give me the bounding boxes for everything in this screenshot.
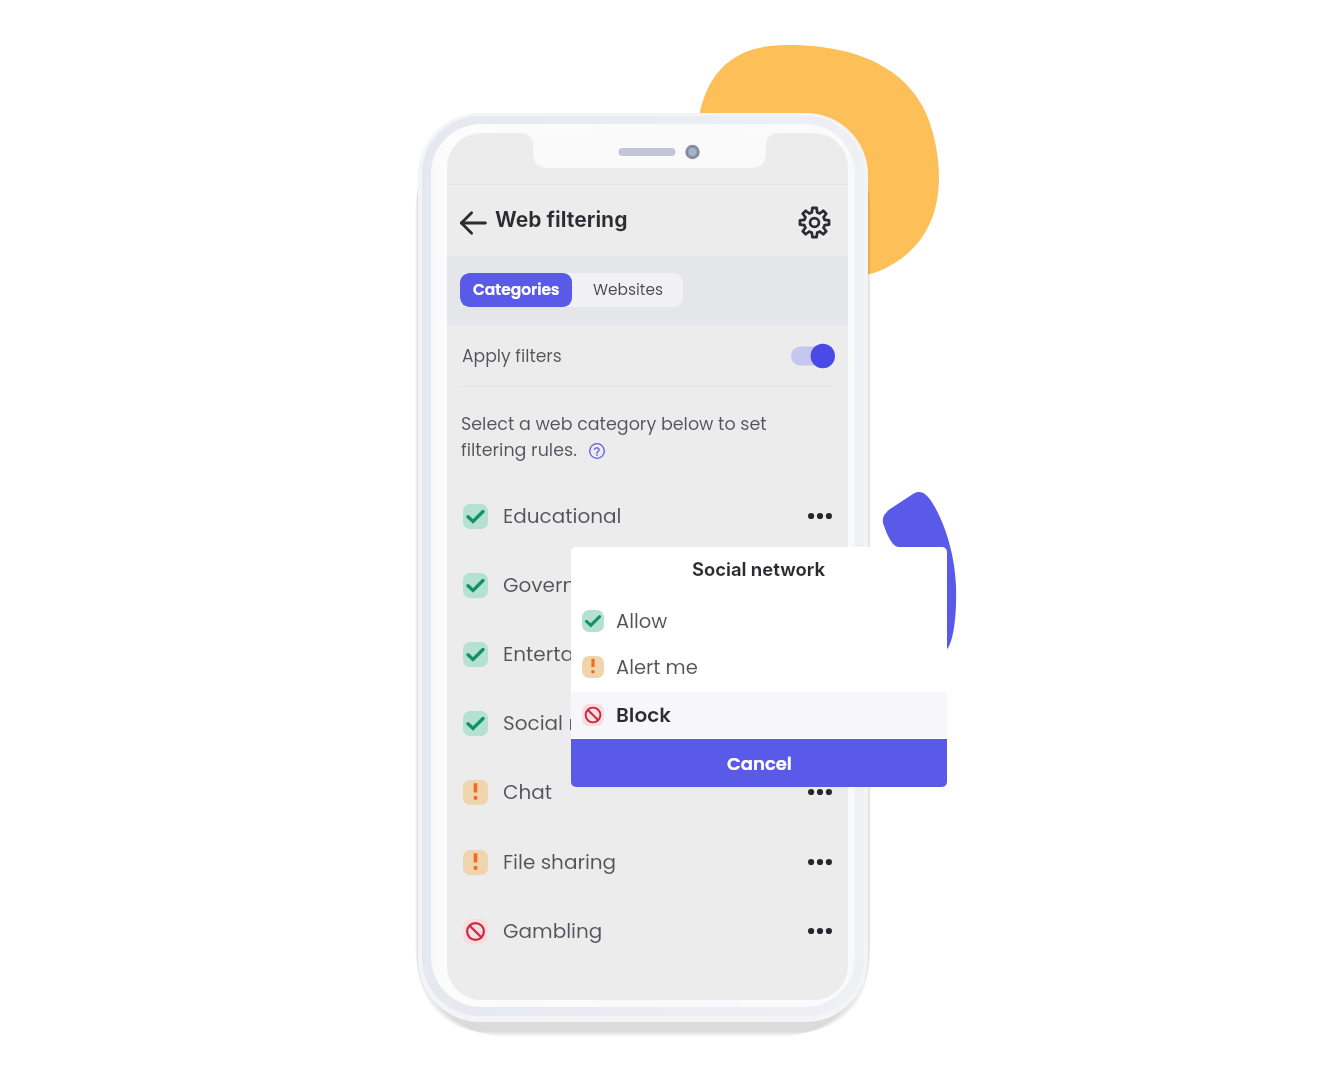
staticText: Government — [503, 571, 629, 599]
button[interactable]: Social network — [447, 688, 848, 758]
staticText: Categories — [473, 279, 560, 301]
button[interactable]: Websites — [572, 273, 683, 307]
staticText: Educational — [503, 502, 622, 530]
staticText: Apply filters — [462, 344, 562, 368]
button[interactable]: More options for File sharing — [800, 842, 840, 882]
staticText: Gambling — [503, 917, 603, 945]
button[interactable]: Educational — [447, 481, 848, 551]
button[interactable]: Help — [587, 441, 607, 461]
button[interactable]: Apply filters — [447, 325, 848, 387]
button[interactable]: Gambling — [447, 896, 848, 966]
button[interactable]: Chat — [447, 757, 848, 827]
button[interactable]: Categories — [460, 273, 572, 307]
button[interactable]: More options for Chat — [800, 772, 840, 812]
button[interactable]: File sharing — [447, 827, 848, 897]
staticText: Alert me — [616, 654, 698, 681]
button[interactable]: Government — [447, 550, 848, 620]
button[interactable]: Entertainment — [447, 619, 848, 689]
button[interactable]: Alert me — [571, 644, 947, 690]
staticText: filtering rules. — [461, 438, 577, 463]
button[interactable]: More options for Gambling — [800, 911, 840, 951]
button[interactable]: Block — [571, 692, 947, 738]
staticText: Cancel — [727, 751, 792, 776]
staticText: Social network — [692, 558, 826, 580]
staticText: Websites — [593, 279, 663, 301]
staticText: Allow — [616, 608, 668, 635]
button[interactable]: More options for Social network — [800, 703, 840, 743]
button[interactable]: More options for Government — [800, 565, 840, 605]
staticText: Web filtering — [495, 207, 628, 232]
button[interactable]: More options for Educational — [800, 496, 840, 536]
button[interactable]: Allow — [571, 598, 947, 644]
staticText: Select a web category below to set — [461, 412, 767, 437]
staticText: Social network — [503, 709, 648, 737]
staticText: Block — [616, 701, 671, 729]
button[interactable]: Back — [451, 201, 494, 245]
button[interactable]: Cancel — [571, 739, 947, 787]
staticText: Chat — [503, 778, 553, 806]
staticText: Entertainment — [503, 640, 645, 668]
button[interactable]: Settings — [792, 200, 836, 244]
staticText: File sharing — [503, 848, 617, 876]
